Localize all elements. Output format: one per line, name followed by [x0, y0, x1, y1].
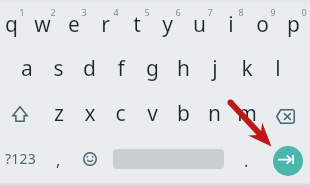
staticText: 3 — [81, 6, 87, 17]
staticText: p — [287, 10, 300, 39]
staticText: 8 — [238, 6, 244, 17]
staticText: u — [193, 10, 206, 39]
staticText: 6 — [175, 6, 181, 17]
button[interactable]: y — [152, 2, 183, 46]
staticText: 7 — [207, 6, 213, 17]
button[interactable]: b — [168, 91, 199, 135]
staticText: . — [244, 150, 249, 172]
staticText: 5 — [144, 6, 150, 17]
button[interactable]: ?123 — [0, 136, 43, 180]
staticText: c — [115, 99, 126, 128]
button[interactable]: . — [231, 136, 262, 180]
button[interactable]: o — [247, 2, 278, 46]
button[interactable]: Emoji — [74, 136, 105, 180]
staticText: v — [147, 99, 158, 128]
staticText: ?123 — [5, 149, 36, 168]
staticText: q — [5, 10, 18, 39]
button[interactable]: z — [43, 91, 74, 135]
button[interactable]: g — [137, 46, 168, 90]
button[interactable]: h — [168, 46, 199, 90]
button[interactable]: s — [43, 46, 74, 90]
staticText: d — [83, 54, 96, 83]
staticText: x — [84, 99, 96, 128]
staticText: 2 — [50, 6, 56, 17]
staticText: m — [237, 99, 257, 128]
button[interactable]: d — [74, 46, 105, 90]
button[interactable]: q — [0, 2, 27, 46]
button[interactable]: k — [231, 46, 262, 90]
button[interactable]: j — [199, 46, 230, 90]
button[interactable]: Backspace — [262, 91, 309, 135]
staticText: e — [68, 10, 80, 39]
button[interactable]: n — [199, 91, 230, 135]
staticText: t — [133, 10, 141, 39]
staticText: y — [162, 10, 173, 39]
staticText: a — [21, 54, 33, 83]
staticText: r — [101, 10, 110, 39]
button[interactable]: m — [231, 91, 262, 135]
staticText: f — [117, 54, 125, 83]
staticText: o — [256, 10, 269, 39]
button[interactable]: c — [105, 91, 136, 135]
staticText: w — [34, 10, 51, 39]
button[interactable]: e — [58, 2, 89, 46]
button[interactable]: i — [215, 2, 246, 46]
staticText: z — [54, 99, 64, 128]
button[interactable]: w — [27, 2, 58, 46]
staticText: n — [208, 99, 221, 128]
staticText: l — [275, 54, 281, 83]
staticText: k — [241, 54, 253, 83]
staticText: 0 — [301, 6, 307, 17]
button[interactable]: Enter — [273, 146, 303, 176]
button[interactable]: v — [137, 91, 168, 135]
button[interactable]: x — [74, 91, 105, 135]
button[interactable]: f — [105, 46, 136, 90]
staticText: b — [177, 99, 190, 128]
staticText: 1 — [19, 6, 25, 17]
button[interactable]: r — [90, 2, 121, 46]
button[interactable]: u — [184, 2, 215, 46]
staticText: i — [228, 10, 234, 39]
button[interactable]: t — [121, 2, 152, 46]
staticText: , — [56, 149, 61, 171]
staticText: s — [53, 54, 64, 83]
staticText: 4 — [113, 6, 119, 17]
staticText: h — [177, 54, 190, 83]
button[interactable]: Shift — [0, 91, 43, 135]
button[interactable]: a — [11, 46, 42, 90]
button[interactable]: p — [278, 2, 309, 46]
button[interactable]: l — [262, 46, 293, 90]
staticText: 9 — [270, 6, 276, 17]
staticText: j — [212, 54, 218, 83]
staticText: g — [146, 54, 159, 83]
button[interactable]: , — [43, 136, 74, 180]
